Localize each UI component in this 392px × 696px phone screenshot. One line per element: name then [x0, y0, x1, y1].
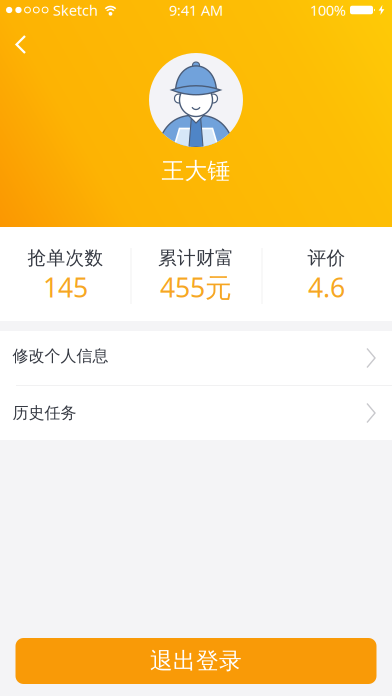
staticText: 累计财富 [158, 246, 234, 269]
staticText: Sketch [53, 0, 98, 20]
button[interactable]: 退出登录 [15, 638, 376, 684]
staticText: 王大锤 [161, 157, 230, 185]
staticText: 100% [310, 0, 346, 20]
staticText: 145 [43, 269, 88, 305]
staticText: 历史任务 [12, 403, 76, 423]
button[interactable]: 修改个人信息 [0, 331, 392, 385]
staticText: 修改个人信息 [12, 346, 108, 366]
staticText: 退出登录 [150, 647, 242, 675]
button[interactable]: 历史任务 [0, 386, 392, 440]
button[interactable] [0, 0, 44, 64]
staticText: 抢单次数 [27, 246, 103, 269]
staticText: 9:41 AM [169, 0, 223, 20]
staticText: 评价 [308, 246, 346, 269]
staticText: 455元 [160, 269, 232, 305]
staticText: 4.6 [308, 269, 345, 305]
